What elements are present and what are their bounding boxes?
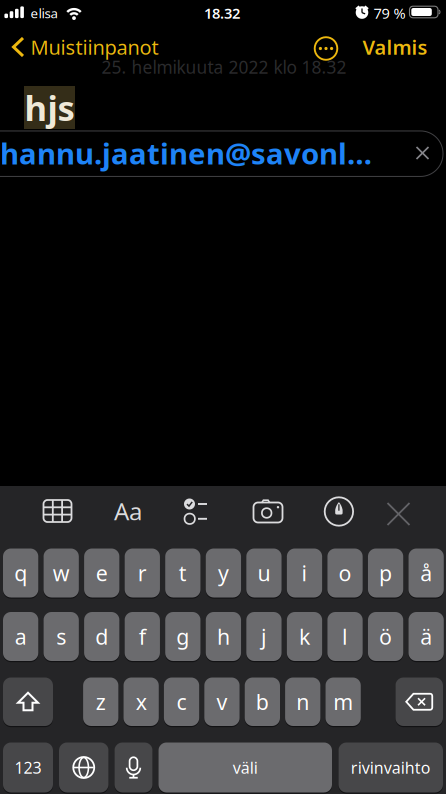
staticText: v xyxy=(216,688,227,716)
staticText: w xyxy=(53,559,70,587)
staticText: e xyxy=(96,559,108,587)
button[interactable]: Delete xyxy=(395,676,443,727)
button[interactable]: s xyxy=(43,611,79,662)
button[interactable]: t xyxy=(165,547,200,598)
staticText: c xyxy=(176,688,186,716)
button[interactable]: u xyxy=(246,547,282,598)
button[interactable]: Close toolbar xyxy=(383,499,413,529)
staticText: h xyxy=(217,622,230,651)
staticText: x xyxy=(136,688,147,716)
button[interactable]: w xyxy=(43,547,79,598)
button[interactable]: z xyxy=(83,676,118,727)
staticText: 123 xyxy=(14,757,41,778)
staticText: hannu.jaatinen@savonl… xyxy=(0,133,372,172)
staticText: 18.32 xyxy=(204,3,240,23)
button[interactable]: a xyxy=(3,611,38,662)
staticText: q xyxy=(14,559,27,587)
staticText: Valmis xyxy=(362,34,427,60)
staticText: ä xyxy=(420,622,432,651)
staticText: r xyxy=(138,559,147,587)
staticText: g xyxy=(176,622,189,651)
staticText: rivinvaihto xyxy=(351,757,431,778)
button[interactable]: ö xyxy=(368,611,403,662)
staticText: 79 % xyxy=(373,3,405,23)
button[interactable]: Next keyboard xyxy=(59,741,108,793)
staticText: n xyxy=(296,688,309,716)
staticText: a xyxy=(15,622,27,651)
button[interactable]: p xyxy=(368,547,403,598)
staticText: elisa xyxy=(30,4,57,22)
staticText: s xyxy=(56,622,66,651)
button[interactable]: m xyxy=(325,676,361,727)
button[interactable]: Markup xyxy=(324,496,354,526)
button[interactable]: k xyxy=(287,611,322,662)
button[interactable]: Text format xyxy=(114,495,142,527)
button[interactable]: Shift xyxy=(3,676,53,727)
staticText: 25. helmikuuta 2022 klo 18.32 xyxy=(101,55,346,78)
button[interactable]: Back xyxy=(11,34,158,60)
staticText: Muistiinpanot xyxy=(30,34,158,60)
staticText: z xyxy=(96,688,106,716)
staticText: f xyxy=(139,622,146,651)
button[interactable]: n xyxy=(285,676,320,727)
button[interactable]: c xyxy=(164,676,199,727)
staticText: p xyxy=(379,559,392,587)
staticText: d xyxy=(95,622,108,651)
button[interactable]: x xyxy=(123,676,159,727)
staticText: o xyxy=(338,559,351,587)
staticText: m xyxy=(333,688,353,716)
staticText: l xyxy=(342,622,348,651)
button[interactable]: r xyxy=(125,547,160,598)
button[interactable]: v xyxy=(204,676,240,727)
staticText: y xyxy=(218,559,229,587)
staticText: ö xyxy=(379,622,392,651)
staticText: t xyxy=(179,559,187,587)
button[interactable]: h xyxy=(206,611,241,662)
button[interactable]: b xyxy=(245,676,280,727)
button[interactable]: i xyxy=(287,547,322,598)
button[interactable]: Clear xyxy=(407,138,437,168)
button[interactable]: More xyxy=(314,36,338,60)
staticText: hjs xyxy=(24,84,74,130)
button[interactable]: g xyxy=(165,611,200,662)
button[interactable]: q xyxy=(3,547,38,598)
staticText: väli xyxy=(233,757,258,778)
staticText: b xyxy=(256,688,269,716)
button[interactable]: Checklist xyxy=(184,498,208,524)
button[interactable]: rivinvaihto xyxy=(338,741,443,793)
button[interactable]: o xyxy=(327,547,363,598)
staticText: u xyxy=(257,559,270,587)
staticText: å xyxy=(420,559,432,587)
button[interactable]: Insert photo xyxy=(253,499,283,523)
staticText: k xyxy=(299,622,310,651)
button[interactable]: e xyxy=(84,547,119,598)
staticText: i xyxy=(301,559,307,587)
button[interactable]: å xyxy=(408,547,444,598)
staticText: Aa xyxy=(114,495,142,527)
button[interactable]: d xyxy=(84,611,119,662)
button[interactable]: j xyxy=(246,611,282,662)
button[interactable]: väli xyxy=(158,741,332,793)
button[interactable]: l xyxy=(327,611,363,662)
staticText: j xyxy=(261,622,267,651)
button[interactable]: Valmis xyxy=(362,34,427,60)
button[interactable]: Dictate xyxy=(114,741,152,793)
button[interactable]: y xyxy=(206,547,241,598)
button[interactable]: f xyxy=(125,611,160,662)
button[interactable]: ä xyxy=(408,611,444,662)
button[interactable]: 123 xyxy=(3,741,53,793)
button[interactable]: Insert table xyxy=(42,499,72,523)
